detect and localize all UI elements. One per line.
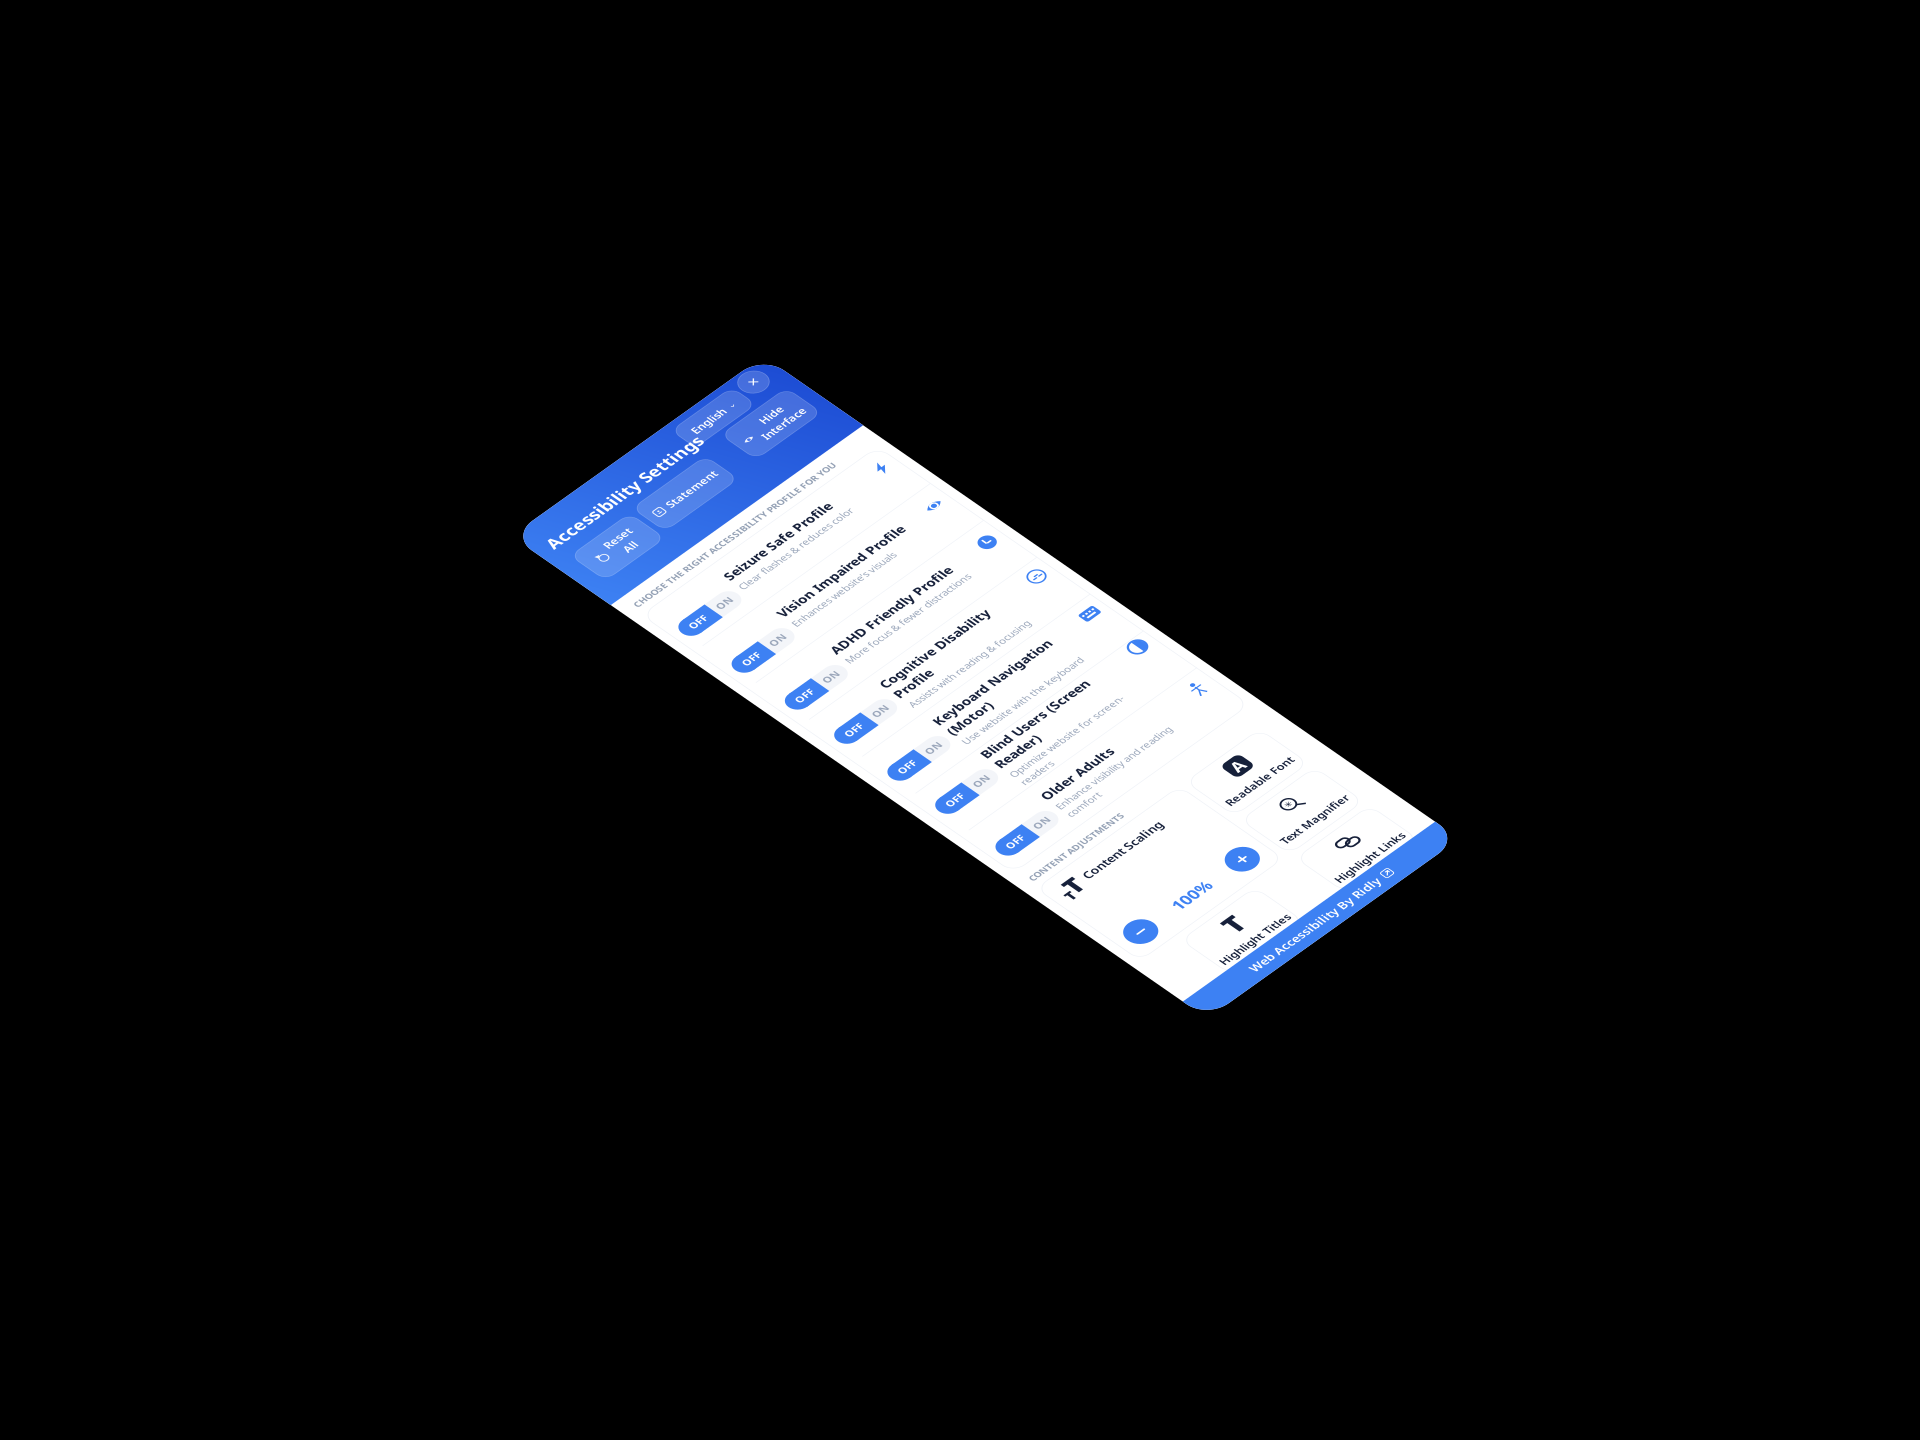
staticText: More focus & fewer distractions: [880, 567, 1074, 585]
staticText: Blind Users (Screen Reader): [880, 787, 1046, 833]
button[interactable]: ON: [773, 699, 1147, 785]
button[interactable]: ON: [773, 873, 1147, 959]
staticText: Assists with reading & focusing: [880, 671, 1068, 688]
staticText: ON: [840, 397, 862, 415]
staticText: Cognitive Disability Profile: [880, 622, 1048, 668]
staticText: OFF: [796, 397, 821, 415]
staticText: OFF: [796, 484, 821, 502]
staticText: Enhances website's visuals: [880, 480, 1040, 498]
button[interactable]: ON: [773, 612, 1147, 698]
staticText: ON: [840, 571, 862, 589]
staticText: OFF: [796, 571, 821, 589]
staticText: Enhance visibility and reading comfort: [880, 911, 1059, 947]
staticText: Vision Impaired Profile: [880, 454, 1076, 477]
button[interactable]: ON: [773, 438, 1147, 524]
staticText: ADHD Friendly Profile: [880, 541, 1067, 564]
staticText: Keyboard Navigation (Motor): [880, 709, 1062, 755]
staticText: Use website with the keyboard: [880, 758, 1068, 775]
staticText: ON: [840, 739, 862, 756]
button[interactable]: ON: [773, 351, 1147, 437]
button[interactable]: ON: [773, 525, 1147, 611]
staticText: Optimize website for screen-readers: [880, 836, 1056, 871]
staticText: ON: [840, 652, 862, 669]
staticText: OFF: [796, 739, 821, 756]
button[interactable]: ON: [773, 786, 1147, 872]
